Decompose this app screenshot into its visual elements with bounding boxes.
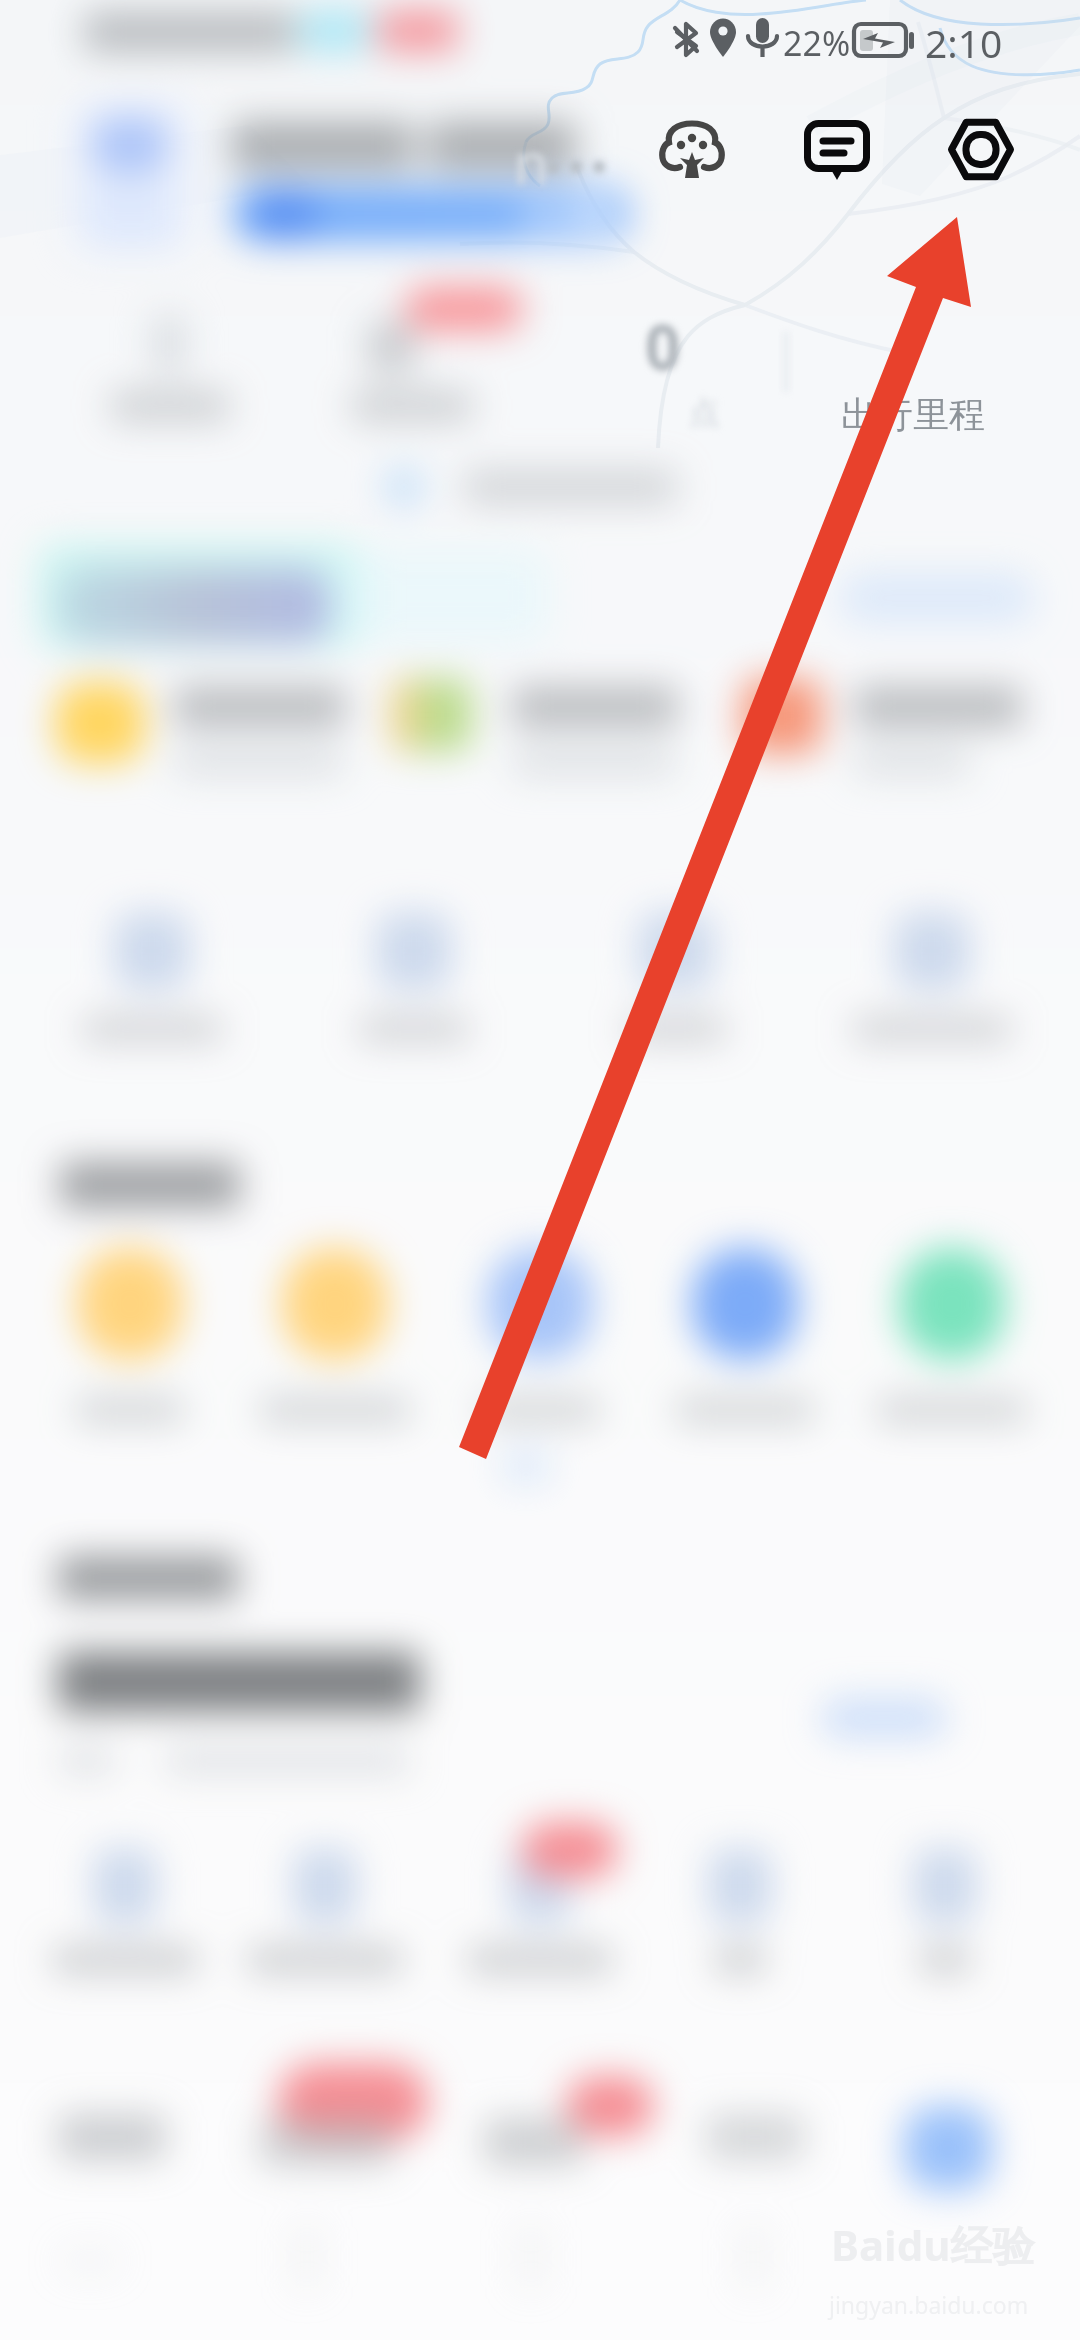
staticText: 点 (689, 393, 720, 432)
button[interactable]: Settings (944, 115, 1018, 189)
staticText: n (514, 124, 549, 200)
staticText: 0 (645, 304, 681, 388)
staticText: 2:10 (925, 16, 1003, 69)
staticText: 出行里程 (841, 392, 985, 437)
staticText: jingyan.baidu.com (829, 2289, 1029, 2320)
button[interactable]: Tree (656, 117, 728, 189)
staticText: 22% (783, 20, 851, 66)
button[interactable]: Messages (800, 116, 874, 190)
staticText: Baidu经验 (831, 2216, 1035, 2273)
